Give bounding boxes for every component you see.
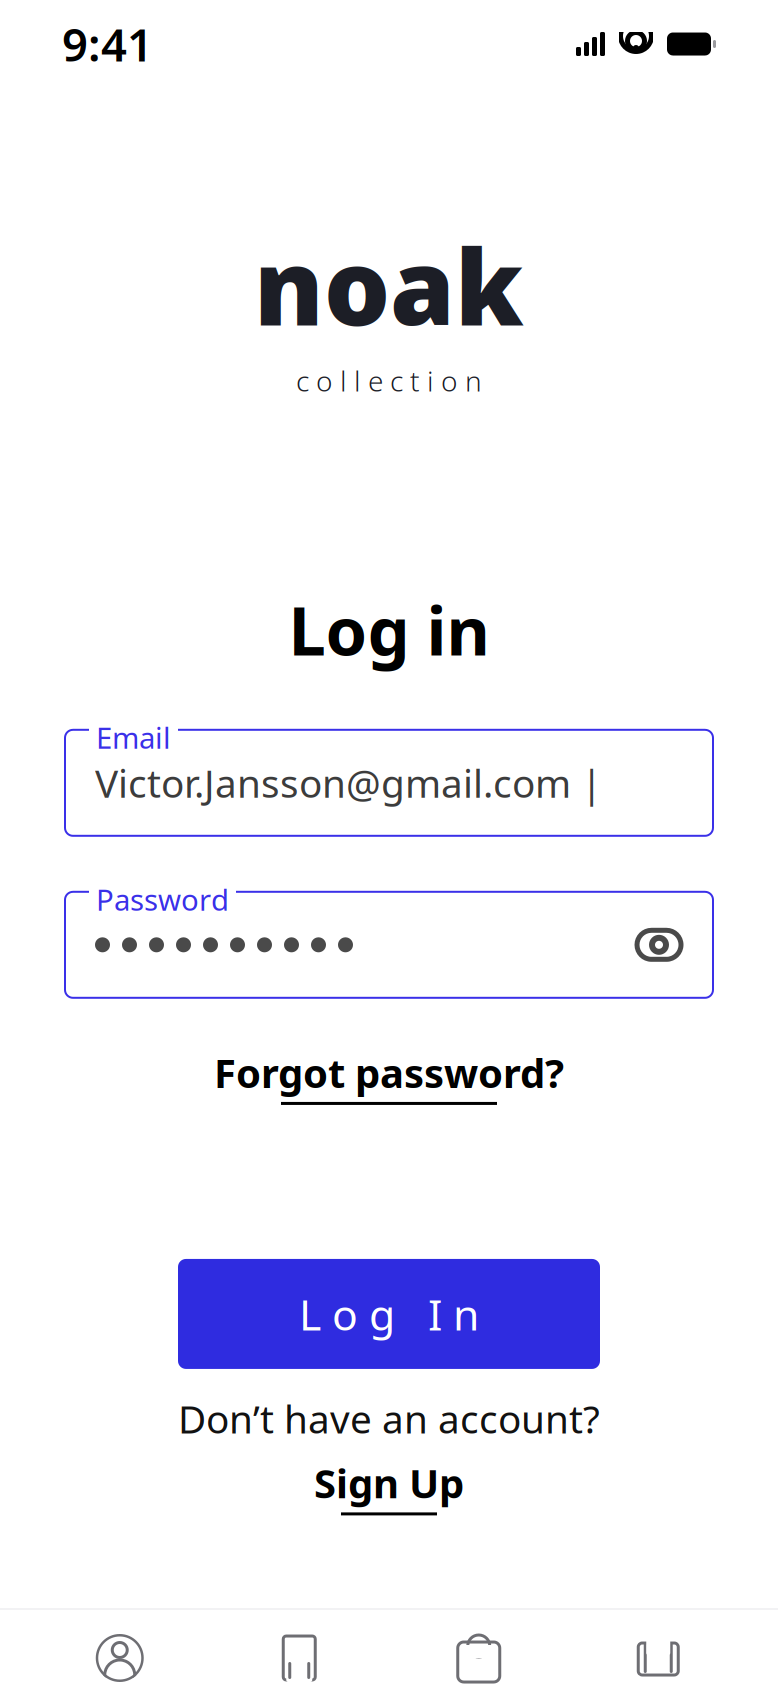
button[interactable]: Home — [568, 1614, 748, 1702]
button[interactable]: Sign Up — [298, 1452, 480, 1519]
staticText: Victor.Jansson@gmail.com | — [95, 757, 602, 808]
button[interactable]: Profile — [30, 1614, 209, 1702]
staticText: Email — [96, 718, 171, 757]
staticText: Password — [96, 880, 229, 919]
button[interactable]: Saved — [209, 1614, 389, 1702]
button[interactable]: Bag — [389, 1614, 568, 1702]
staticText: 9:41 — [62, 14, 153, 74]
staticText: Forgot password? — [214, 1046, 564, 1099]
staticText: noak — [254, 216, 524, 354]
staticText: Don’t have an account? — [178, 1393, 600, 1444]
staticText: Log in — [288, 585, 489, 674]
button[interactable]: Forgot password? — [198, 1040, 580, 1111]
staticText: L o g I n — [299, 1286, 479, 1342]
staticText: c o l l e c t i o n — [296, 362, 482, 399]
staticText: Sign Up — [314, 1456, 464, 1509]
button[interactable]: L o g I n — [178, 1259, 600, 1369]
